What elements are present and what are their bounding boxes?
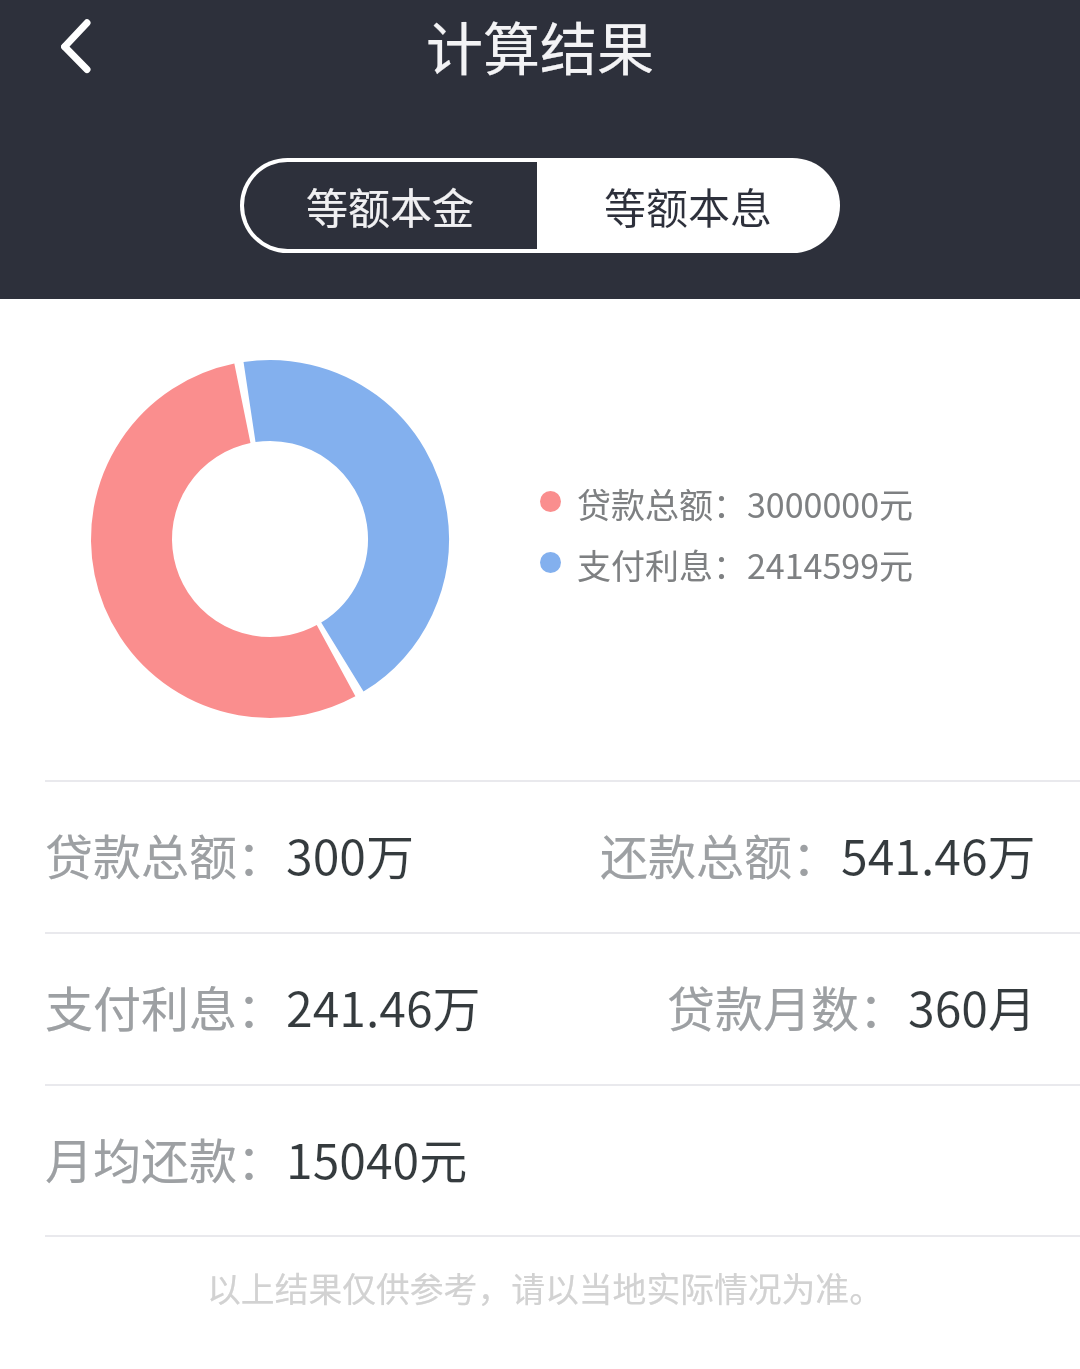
- staticText: 等额本息: [604, 175, 773, 236]
- staticText: 以上结果仅供参考，请以当地实际情况为准。: [207, 1263, 883, 1312]
- staticText: 还款总额：: [600, 819, 841, 889]
- staticText: 241.46万: [286, 971, 481, 1041]
- staticText: 541.46万: [841, 819, 1036, 889]
- button[interactable]: 支付利息：: [0, 934, 1080, 1084]
- button[interactable]: 等额本息: [537, 158, 840, 253]
- staticText: 贷款总额：: [45, 819, 286, 889]
- button[interactable]: 等额本金: [244, 162, 537, 249]
- staticText: 支付利息：: [45, 971, 286, 1041]
- staticText: 月均还款：: [45, 1123, 286, 1193]
- staticText: 等额本金: [306, 175, 475, 236]
- staticText: 支付利息：2414599元: [577, 540, 914, 589]
- staticText: 300万: [286, 819, 414, 889]
- staticText: 贷款总额：3000000元: [577, 479, 914, 528]
- button[interactable]: 月均还款：: [0, 1086, 1080, 1236]
- button[interactable]: 贷款总额：: [0, 782, 1080, 932]
- button[interactable]: Back: [28, 0, 124, 92]
- staticText: 计算结果: [426, 4, 654, 87]
- staticText: 贷款月数：: [667, 971, 908, 1041]
- staticText: 15040元: [286, 1123, 468, 1193]
- staticText: 360月: [908, 971, 1036, 1041]
